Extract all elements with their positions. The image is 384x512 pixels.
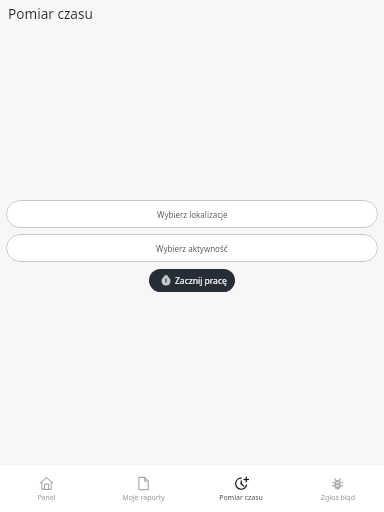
staticText: Zgłoś błąd (321, 493, 355, 503)
button[interactable]: Panel (0, 466, 95, 503)
staticText: Moje raporty (122, 493, 165, 503)
staticText: Pomiar czasu (8, 4, 93, 23)
staticText: Wybierz lokalizacje (157, 209, 228, 220)
button[interactable]: Pomiar czasu (192, 466, 289, 503)
button[interactable]: Zgłoś błąd (289, 466, 384, 503)
button[interactable]: Zacznij pracę (149, 269, 235, 292)
staticText: Wybierz aktywność (156, 243, 228, 254)
staticText: Zacznij pracę (175, 275, 227, 287)
staticText: Panel (37, 493, 56, 503)
button[interactable]: Wybierz lokalizacje (6, 200, 378, 228)
button[interactable]: Wybierz aktywność (6, 234, 378, 262)
button[interactable]: Moje raporty (95, 466, 192, 503)
staticText: Pomiar czasu (219, 493, 263, 503)
